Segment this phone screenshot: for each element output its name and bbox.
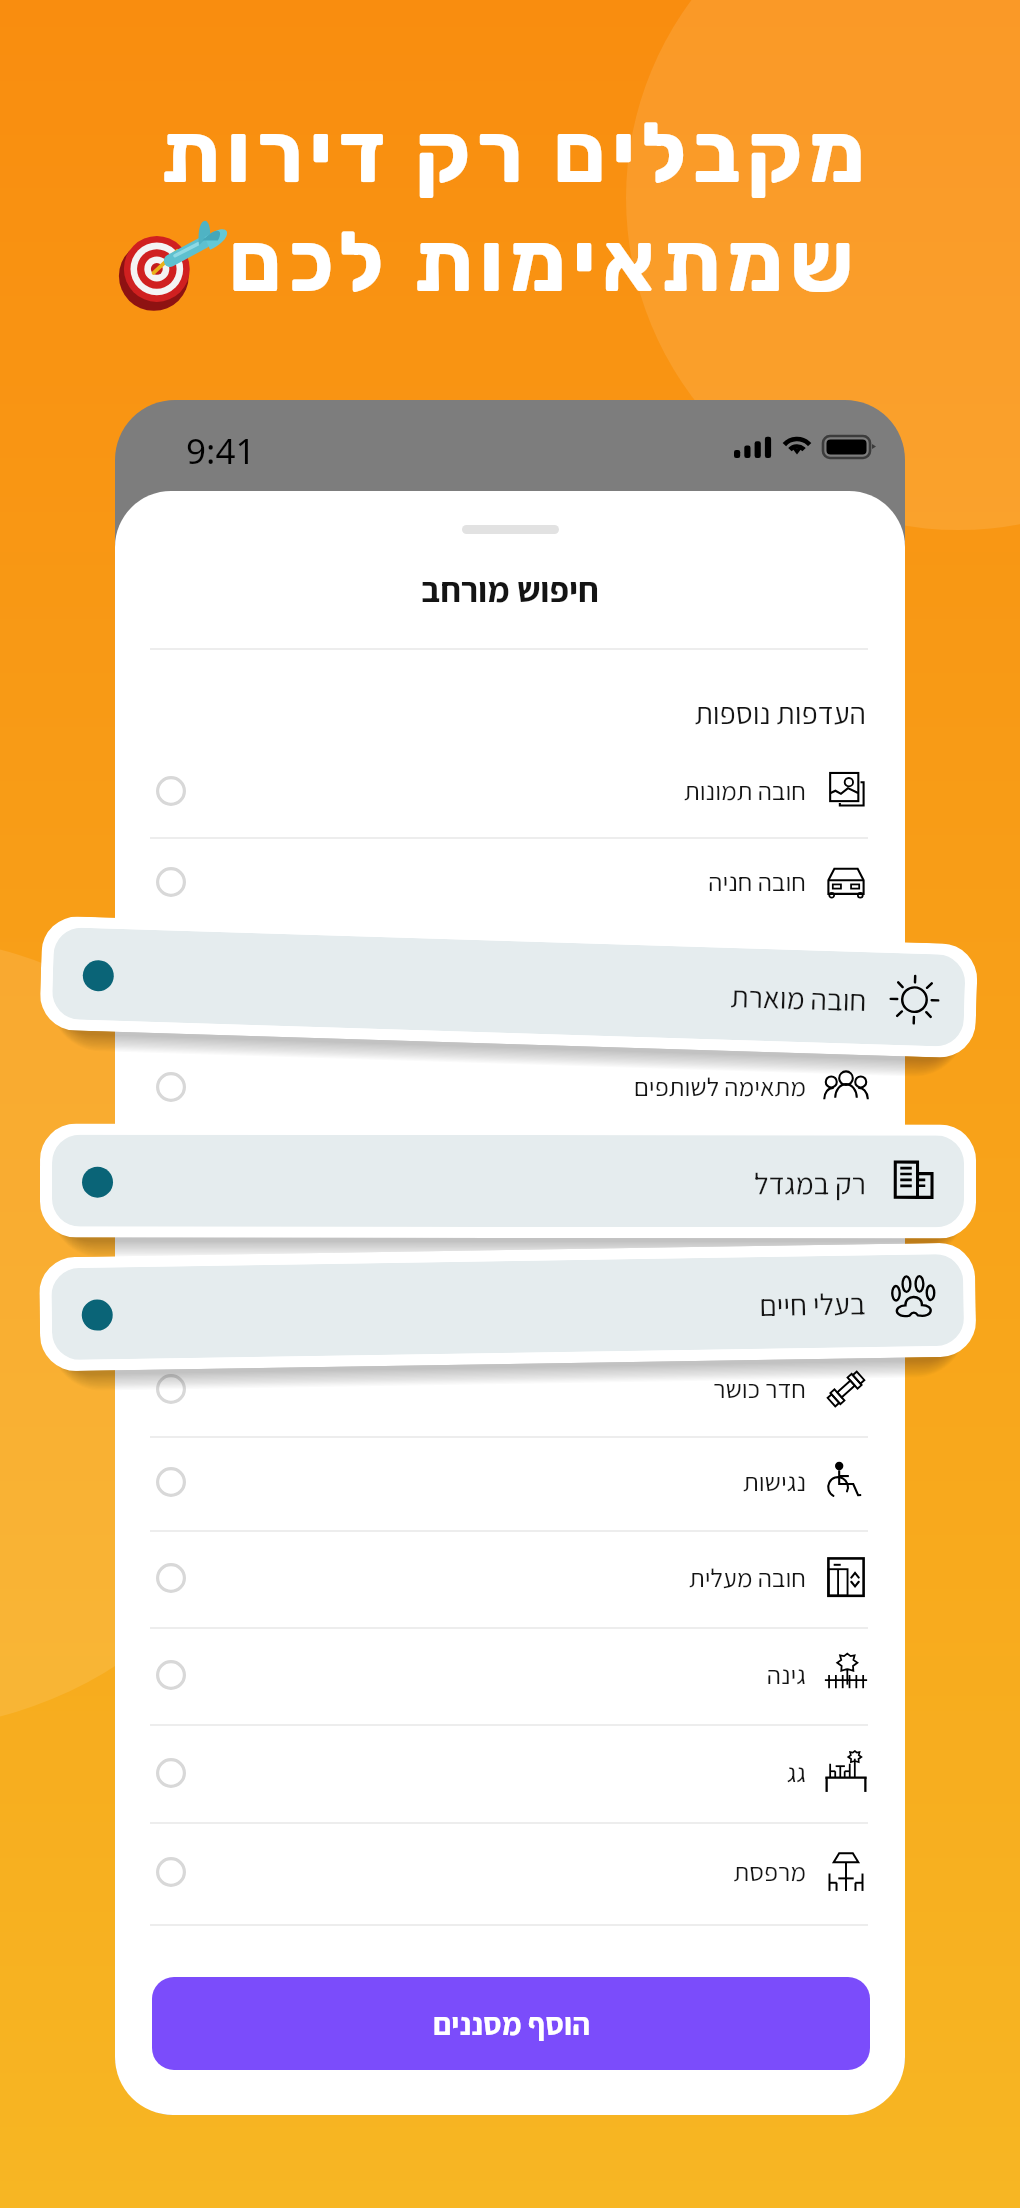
staticText: גג [300,1755,806,1789]
staticText: מתאימה לשותפים [300,1069,806,1103]
staticText: גינה [300,1657,806,1691]
staticText: חיפוש מורחב [115,566,905,612]
staticText: בעלי חיים [481,1283,866,1328]
staticText: העדפות נוספות [400,693,866,732]
button[interactable]: בעלי חיים [39,1242,976,1371]
staticText: הוסף מסננים [433,2003,590,2044]
other: בעלי חיים [888,1275,939,1326]
other: מרפסת [824,1850,868,1894]
button[interactable]: רק במגדל [40,1124,976,1238]
button[interactable]: גינה [150,1633,868,1717]
button[interactable]: מרפסת [150,1830,868,1914]
staticText: שמתאימות לכם [34,212,1020,312]
button[interactable]: נגישות [150,1440,868,1524]
other: Status icons [730,425,880,465]
other: רק במגדל [889,1156,939,1206]
staticText: 9:41 [186,427,256,475]
other: חובה מוארת [889,974,940,1025]
button[interactable]: חובה חניה [150,840,868,924]
other: חובה מעלית [824,1556,868,1600]
staticText: חדר כושר [300,1371,806,1405]
staticText: מרפסת [300,1854,806,1888]
other: גינה [824,1653,868,1697]
button[interactable]: חדר כושר [150,1347,868,1431]
other: מתאימה לשותפים [824,1065,868,1109]
other: חובה תמונות [824,769,868,813]
other: חובה חניה [824,860,868,904]
staticText: נגישות [300,1464,806,1498]
other: גג [824,1751,868,1795]
staticText: חובה מעלית [300,1560,806,1594]
button[interactable]: חובה מוארת [39,915,978,1058]
staticText: חובה מוארת [482,968,867,1019]
other: חדר כושר [824,1367,868,1411]
button[interactable]: חובה תמונות [150,749,868,833]
staticText: חובה תמונות [300,773,806,807]
staticText: רק במגדל [482,1163,866,1202]
button[interactable]: מתאימה לשותפים [150,1045,868,1129]
button[interactable]: גג [150,1731,868,1815]
button[interactable]: הוסף מסננים [152,1977,870,2070]
button[interactable]: חובה מעלית [150,1536,868,1620]
other: נגישות [824,1460,868,1504]
staticText: חובה חניה [300,864,806,898]
staticText: מקבלים רק דירות [6,103,1020,203]
